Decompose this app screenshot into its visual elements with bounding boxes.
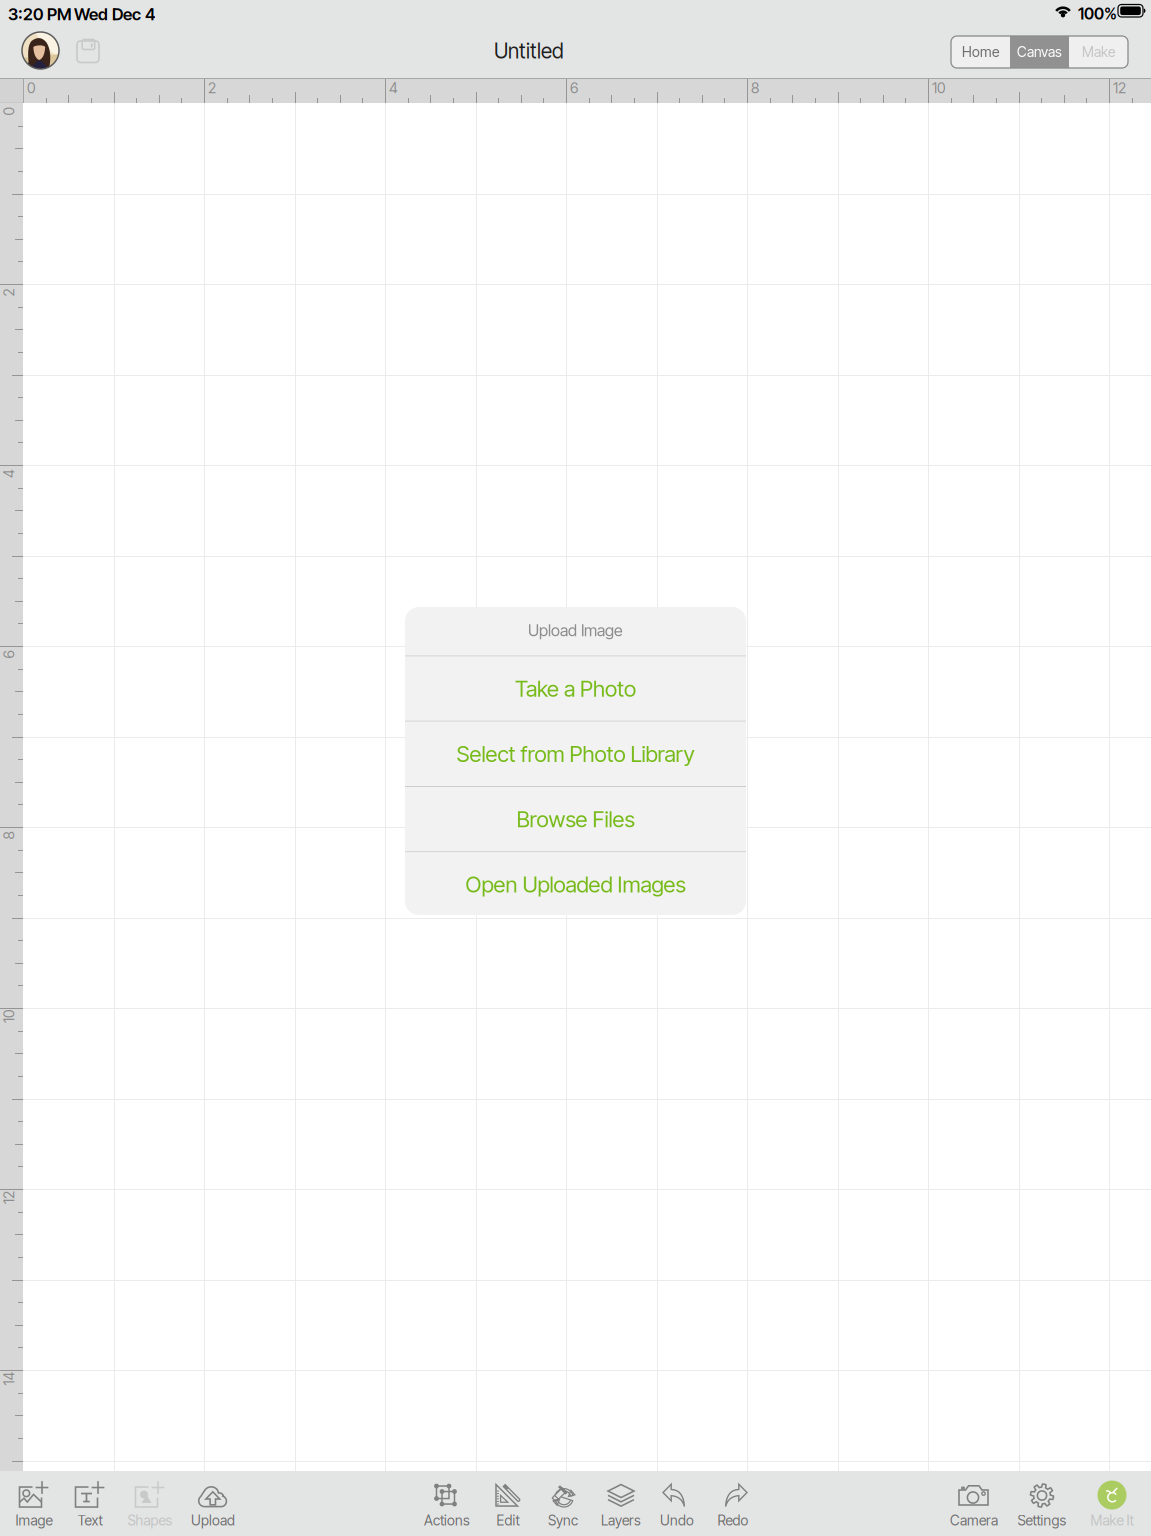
button[interactable]: Make xyxy=(1069,36,1128,68)
staticText: Settings xyxy=(1017,1512,1066,1529)
staticText: Image xyxy=(15,1512,52,1529)
staticText: Actions xyxy=(424,1512,470,1529)
button[interactable]: Actions xyxy=(403,1471,491,1536)
staticText: Redo xyxy=(717,1512,748,1529)
staticText: Text xyxy=(77,1512,102,1529)
staticText: 6 xyxy=(5,646,13,663)
button[interactable]: Home xyxy=(951,36,1010,68)
button[interactable]: Sync xyxy=(519,1471,607,1536)
staticText: 0 xyxy=(5,103,13,120)
staticText: 10 xyxy=(932,79,945,97)
staticText: Make xyxy=(1082,43,1115,60)
staticText: 2 xyxy=(5,284,13,301)
button[interactable]: Select from Photo Library xyxy=(405,722,746,786)
staticText: Home xyxy=(962,43,999,60)
button[interactable]: Save xyxy=(68,32,108,71)
staticText: 14 xyxy=(2,1370,16,1387)
button[interactable]: Settings xyxy=(998,1471,1086,1536)
staticText: Select from Photo Library xyxy=(456,741,694,767)
staticText: Layers xyxy=(601,1512,641,1529)
button[interactable]: Account xyxy=(16,26,65,75)
staticText: 10 xyxy=(2,1008,15,1025)
staticText: Edit xyxy=(496,1512,519,1529)
button[interactable]: Canvas xyxy=(1010,36,1069,68)
staticText: 4 xyxy=(4,465,13,482)
staticText: 100% xyxy=(1078,4,1117,23)
staticText: Undo xyxy=(660,1512,694,1529)
staticText: 8 xyxy=(751,79,759,97)
button[interactable]: Edit xyxy=(464,1471,552,1536)
button[interactable]: Layers xyxy=(577,1471,665,1536)
button[interactable]: Text xyxy=(46,1471,134,1536)
staticText: Make It xyxy=(1090,1512,1133,1529)
button[interactable]: Image xyxy=(0,1471,78,1536)
button[interactable]: Redo xyxy=(689,1471,777,1536)
staticText: 0 xyxy=(27,79,35,97)
button[interactable]: Browse Files xyxy=(405,787,746,851)
staticText: 3:20 PM xyxy=(8,4,72,24)
staticText: Camera xyxy=(950,1512,998,1529)
staticText: Open Uploaded Images xyxy=(465,871,685,898)
staticText: Sync xyxy=(548,1512,578,1529)
button[interactable]: Take a Photo xyxy=(405,656,746,721)
button[interactable]: Undo xyxy=(633,1471,721,1536)
staticText: Take a Photo xyxy=(515,675,636,702)
button[interactable]: Shapes xyxy=(106,1471,194,1536)
staticText: Untitled xyxy=(494,38,564,63)
button[interactable]: Make It xyxy=(1068,1471,1151,1536)
staticText: Upload Image xyxy=(528,621,623,640)
staticText: 4 xyxy=(389,79,398,97)
staticText: 12 xyxy=(1113,79,1126,97)
staticText: 6 xyxy=(570,79,578,97)
staticText: Shapes xyxy=(127,1512,172,1529)
staticText: 8 xyxy=(5,827,13,844)
button[interactable]: Open Uploaded Images xyxy=(405,852,746,916)
staticText: Upload xyxy=(191,1512,235,1529)
staticText: Wed Dec 4 xyxy=(74,4,155,24)
staticText: 2 xyxy=(208,79,216,97)
button[interactable]: Upload xyxy=(169,1471,257,1536)
staticText: Browse Files xyxy=(516,806,634,832)
staticText: 12 xyxy=(2,1189,15,1206)
button[interactable]: Camera xyxy=(930,1471,1018,1536)
staticText: Canvas xyxy=(1017,43,1062,60)
